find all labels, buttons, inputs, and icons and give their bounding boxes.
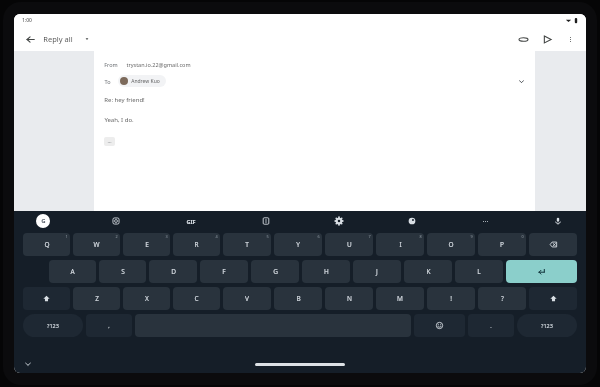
button[interactable]: Emoji	[414, 314, 465, 337]
staticText: R	[194, 240, 199, 249]
staticText: Reply all	[43, 34, 73, 44]
button[interactable]: Settings	[331, 213, 347, 229]
button[interactable]: S	[99, 260, 146, 283]
staticText: ?123	[541, 322, 553, 329]
button[interactable]: F	[200, 260, 248, 283]
staticText: U	[347, 240, 352, 249]
staticText: .	[490, 322, 492, 329]
button[interactable]: I	[376, 233, 424, 256]
staticText: 1:00	[22, 17, 32, 24]
button[interactable]: U	[325, 233, 373, 256]
button[interactable]: J	[353, 260, 401, 283]
staticText: C	[194, 294, 199, 303]
button[interactable]: O	[427, 233, 475, 256]
staticText: 8	[419, 234, 422, 239]
button[interactable]: Send	[539, 31, 555, 47]
button[interactable]: .	[468, 314, 514, 337]
button[interactable]: H	[302, 260, 350, 283]
staticText: D	[171, 267, 176, 276]
button[interactable]: Stickers	[108, 213, 124, 229]
button[interactable]: Y	[274, 233, 322, 256]
staticText: O	[448, 240, 454, 249]
staticText: trystan.io.22@gmail.com	[126, 61, 191, 68]
button[interactable]: C	[173, 287, 220, 310]
staticText: H	[324, 267, 329, 276]
button[interactable]: B	[274, 287, 322, 310]
staticText: X	[145, 294, 149, 303]
button[interactable]: R	[173, 233, 220, 256]
staticText: Andrew Kuo	[131, 78, 160, 85]
button[interactable]: ,	[86, 314, 132, 337]
button[interactable]: ?	[478, 287, 526, 310]
staticText: G	[41, 217, 46, 225]
staticText: P	[500, 240, 504, 249]
staticText: F	[222, 267, 226, 276]
staticText: GIF	[186, 218, 196, 225]
staticText: 0	[521, 234, 524, 239]
staticText: V	[245, 294, 249, 303]
button[interactable]: Themes	[404, 213, 420, 229]
button[interactable]: Andrew Kuo	[120, 77, 164, 85]
staticText: Yeah, I do.	[104, 116, 134, 124]
button[interactable]: Voice input	[550, 213, 566, 229]
button[interactable]: G	[251, 260, 299, 283]
staticText: ...	[107, 138, 112, 145]
staticText: ?	[501, 294, 504, 303]
staticText: To	[104, 78, 111, 85]
button[interactable]: Back	[22, 31, 38, 47]
button[interactable]: GIF	[182, 214, 200, 228]
staticText: N	[347, 294, 352, 303]
staticText: W	[93, 240, 100, 249]
button[interactable]: Attach	[515, 31, 531, 47]
staticText: Re: hey friend!	[104, 96, 145, 104]
staticText: G	[273, 267, 278, 276]
staticText: 5	[266, 234, 269, 239]
button[interactable]: P	[478, 233, 526, 256]
button[interactable]: V	[223, 287, 271, 310]
button[interactable]: D	[149, 260, 197, 283]
button[interactable]: !	[427, 287, 475, 310]
staticText: T	[245, 240, 249, 249]
staticText: B	[296, 294, 301, 303]
staticText: 3	[165, 234, 168, 239]
button[interactable]: Z	[73, 287, 120, 310]
button[interactable]: ?123	[23, 314, 83, 337]
button[interactable]: T	[223, 233, 271, 256]
staticText: K	[426, 267, 431, 276]
button[interactable]: More options	[562, 31, 578, 47]
button[interactable]: Google Assistant	[36, 214, 50, 228]
button[interactable]: Show quoted text	[107, 138, 112, 145]
button[interactable]: L	[455, 260, 503, 283]
button[interactable]: A	[49, 260, 96, 283]
button[interactable]: ?123	[517, 314, 577, 337]
button[interactable]: X	[123, 287, 170, 310]
staticText: 7	[368, 234, 371, 239]
staticText: 2	[115, 234, 118, 239]
staticText: 6	[317, 234, 320, 239]
staticText: L	[477, 267, 481, 276]
staticText: S	[121, 267, 125, 276]
button[interactable]: Enter	[506, 260, 577, 283]
button[interactable]: More	[477, 213, 493, 229]
button[interactable]: M	[376, 287, 424, 310]
button[interactable]: K	[404, 260, 452, 283]
button[interactable]: N	[325, 287, 373, 310]
button[interactable]: Shift	[529, 287, 577, 310]
button[interactable]: Expand recipients	[515, 75, 527, 87]
button[interactable]: Shift	[23, 287, 70, 310]
button[interactable]: Clipboard	[258, 213, 274, 229]
button[interactable]: Q	[23, 233, 70, 256]
staticText: ,	[108, 322, 110, 329]
staticText: Y	[296, 240, 300, 249]
staticText: Z	[95, 294, 99, 303]
button[interactable]: W	[73, 233, 120, 256]
staticText: M	[397, 294, 403, 303]
button[interactable]: Backspace	[529, 233, 577, 256]
button[interactable]: E	[123, 233, 170, 256]
staticText: Q	[44, 240, 50, 249]
button[interactable]: Reply options	[81, 33, 93, 45]
staticText: 1	[65, 234, 68, 239]
staticText: 4	[215, 234, 218, 239]
button[interactable]: Hide keyboard	[22, 358, 34, 370]
